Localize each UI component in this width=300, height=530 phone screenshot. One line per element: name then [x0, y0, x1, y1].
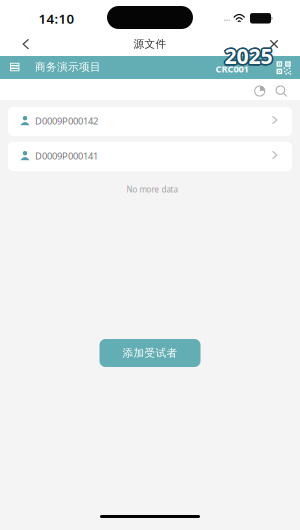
- staticText: 源文件: [133, 37, 166, 50]
- staticText: No more data: [126, 184, 177, 195]
- staticText: 2025: [223, 40, 271, 69]
- button[interactable]: D0009P000141: [8, 142, 292, 171]
- staticText: 2025: [226, 42, 274, 70]
- button[interactable]: Close: [262, 32, 286, 55]
- staticText: 添加受试者: [122, 346, 177, 359]
- button[interactable]: Search: [271, 81, 291, 101]
- button[interactable]: 添加受试者: [99, 339, 200, 367]
- staticText: 2025: [223, 43, 271, 71]
- staticText: 2025: [223, 42, 271, 70]
- button[interactable]: D0009P000142: [8, 107, 292, 136]
- staticText: D0009P000142: [35, 115, 98, 127]
- staticText: CRC001: [215, 63, 248, 75]
- staticText: 2025: [224, 43, 272, 71]
- staticText: 2025: [226, 42, 274, 71]
- staticText: 14:10: [38, 10, 74, 27]
- staticText: 2025: [226, 40, 274, 69]
- staticText: 商务演示项目: [35, 60, 101, 73]
- staticText: 2025: [224, 40, 272, 68]
- staticText: 2025: [225, 40, 273, 68]
- staticText: D0009P000141: [35, 150, 98, 162]
- staticText: 2025: [223, 41, 271, 69]
- button[interactable]: Back: [12, 32, 40, 55]
- staticText: 2025: [224, 43, 272, 71]
- staticText: 2025: [226, 43, 274, 71]
- staticText: 2025: [224, 42, 272, 70]
- button[interactable]: Statistics: [250, 81, 270, 101]
